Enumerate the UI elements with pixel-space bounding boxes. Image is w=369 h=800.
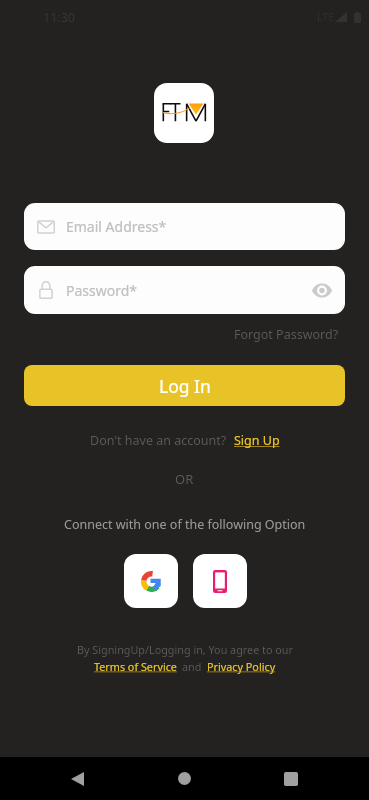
button[interactable]: Sign in with Google [124, 554, 178, 608]
staticText: Forgot Password? [234, 326, 339, 343]
staticText: LTE [317, 10, 334, 24]
staticText: Password* [66, 281, 138, 300]
button[interactable]: Home [162, 757, 207, 800]
button[interactable]: Terms of Service [94, 659, 177, 674]
staticText: Don't have an account? [90, 432, 227, 449]
staticText: Privacy Policy [207, 659, 276, 674]
staticText: and [182, 659, 202, 674]
button[interactable]: Sign Up [234, 432, 280, 449]
button[interactable]: Email Address* [24, 203, 345, 250]
button[interactable]: Log In [24, 365, 345, 406]
staticText: Sign Up [234, 432, 280, 449]
button[interactable]: Show password [310, 278, 334, 302]
staticText: Terms of Service [94, 659, 177, 674]
button[interactable]: Back [55, 757, 99, 800]
button[interactable]: Sign in with phone [193, 554, 247, 608]
button[interactable]: Recent apps [269, 757, 313, 800]
button[interactable]: Forgot Password? [234, 326, 339, 343]
staticText: Connect with one of the following Option [64, 516, 306, 533]
staticText: Log In [159, 374, 211, 398]
staticText: OR [175, 470, 194, 488]
button[interactable]: Privacy Policy [207, 659, 276, 674]
button[interactable]: Password* [24, 266, 345, 314]
staticText: 11:30 [43, 9, 75, 26]
staticText: Email Address* [66, 217, 167, 236]
staticText: By SigningUp/Logging in, You agree to ou… [77, 642, 293, 657]
